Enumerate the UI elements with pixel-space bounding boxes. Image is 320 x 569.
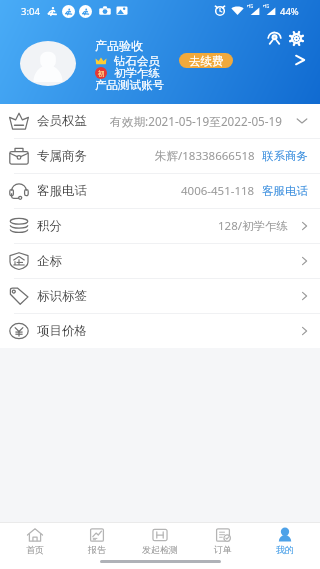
staticText: 产品验收 — [95, 38, 143, 53]
staticText: 我的 — [276, 544, 294, 555]
staticText: 产品测试账号 — [95, 78, 164, 92]
button[interactable]: 积分 — [0, 209, 320, 243]
staticText: 钻石会员 — [114, 54, 160, 68]
staticText: 3:04 — [21, 5, 40, 18]
button[interactable]: 首页 — [7, 523, 63, 555]
staticText: 报告 — [88, 544, 106, 555]
button[interactable]: 我的 — [257, 523, 313, 555]
button[interactable]: 企标 — [0, 244, 320, 278]
button[interactable]: 项目价格 — [0, 314, 320, 348]
button[interactable]: 报告 — [69, 523, 125, 555]
staticText: 订单 — [214, 544, 232, 555]
button[interactable]: 会员权益 — [0, 104, 320, 138]
staticText: 首页 — [26, 544, 44, 555]
button[interactable]: 标识标签 — [0, 279, 320, 313]
staticText: 4006-451-118 — [181, 183, 255, 199]
staticText: 有效期:2021-05-19至2022-05-19 — [110, 113, 282, 129]
staticText: 会员权益 — [37, 113, 87, 129]
staticText: 初学乍练 — [114, 66, 160, 80]
staticText: 44% — [280, 5, 299, 18]
staticText: 企标 — [37, 253, 62, 269]
button[interactable]: 设置 — [289, 31, 304, 46]
staticText: 项目价格 — [37, 323, 87, 339]
staticText: 发起检测 — [142, 544, 178, 555]
button[interactable]: 去续费 — [179, 53, 233, 68]
staticText: 初 — [98, 69, 105, 78]
button[interactable]: 客服电话 — [0, 174, 320, 208]
staticText: 专属商务 — [37, 148, 87, 164]
button[interactable]: 头像 — [20, 41, 76, 86]
button[interactable]: 客服 — [267, 31, 282, 46]
button[interactable]: 专属商务 — [0, 139, 320, 173]
staticText: 标识标签 — [37, 288, 87, 304]
staticText: 去续费 — [189, 54, 224, 68]
button[interactable]: 更多 — [293, 54, 307, 66]
button[interactable]: 订单 — [195, 523, 251, 555]
staticText: 联系商务 — [262, 149, 308, 163]
staticText: 128/初学乍练 — [218, 218, 289, 234]
staticText: 客服电话 — [37, 183, 87, 199]
staticText: 客服电话 — [262, 184, 308, 198]
staticText: 积分 — [37, 218, 62, 234]
button[interactable]: 发起检测 — [132, 523, 188, 555]
staticText: 朱辉/18338666518 — [155, 148, 255, 164]
